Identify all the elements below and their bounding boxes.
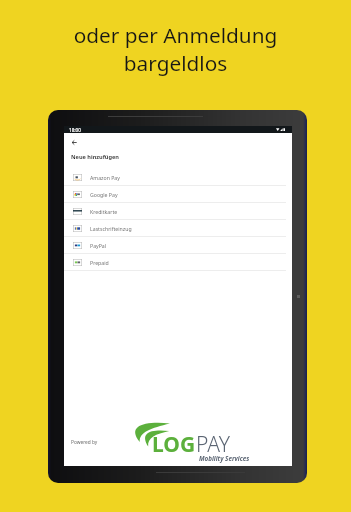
staticText: Amazon Pay: [90, 174, 120, 181]
staticText: LOG: [152, 430, 196, 459]
button[interactable]: Google Pay: [64, 186, 292, 202]
staticText: Powered by: [71, 439, 98, 446]
button[interactable]: Kreditkarte: [64, 203, 292, 219]
staticText: PayPal: [90, 242, 107, 249]
staticText: oder per Anmeldung bargeldlos: [0, 21, 351, 77]
button[interactable]: PayPal: [64, 237, 292, 253]
button[interactable]: Back: [69, 137, 80, 148]
button[interactable]: Lastschrifteinzug: [64, 220, 292, 236]
staticText: Google Pay: [90, 191, 118, 198]
staticText: Lastschrifteinzug: [90, 225, 132, 232]
staticText: Kreditkarte: [90, 208, 118, 215]
staticText: PAY: [196, 430, 231, 459]
button[interactable]: Amazon Pay: [64, 169, 292, 185]
button[interactable]: Prepaid: [64, 254, 292, 270]
staticText: Mobility Services: [199, 454, 250, 463]
staticText: 18:00: [69, 127, 81, 133]
staticText: Prepaid: [90, 259, 109, 266]
staticText: Neue hinzufügen: [71, 153, 119, 161]
